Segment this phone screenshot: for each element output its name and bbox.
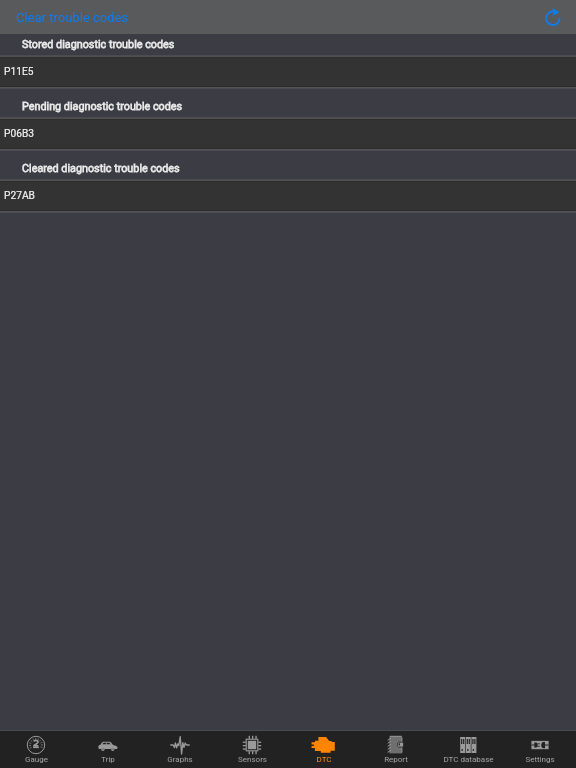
staticText: P11E5 [4, 66, 34, 78]
button[interactable]: Refresh [540, 4, 566, 30]
button[interactable]: Stored diagnostic trouble codes [0, 34, 576, 55]
staticText: DTC database [443, 755, 494, 764]
button[interactable]: Pending diagnostic trouble codes [0, 96, 576, 117]
button[interactable]: Trip [72, 731, 144, 768]
staticText: Pending diagnostic trouble codes [22, 100, 183, 113]
staticText: Graphs [167, 755, 193, 764]
staticText: Gauge [25, 755, 48, 764]
staticText: Cleared diagnostic trouble codes [22, 162, 180, 175]
button[interactable]: Cleared diagnostic trouble codes [0, 158, 576, 179]
button[interactable]: Sensors [216, 731, 288, 768]
staticText: P27AB [4, 190, 35, 202]
staticText: Trip [101, 755, 115, 764]
button[interactable]: Settings [504, 731, 576, 768]
staticText: Sensors [238, 755, 267, 764]
staticText: P06B3 [4, 128, 34, 140]
button[interactable]: Report [360, 731, 432, 768]
button[interactable]: Gauge [0, 731, 72, 768]
staticText: Settings [525, 755, 555, 764]
staticText: Report [384, 755, 408, 764]
button[interactable]: DTC database [432, 731, 504, 768]
button[interactable]: P11E5 [0, 58, 576, 86]
button[interactable]: DTC [288, 731, 360, 768]
button[interactable]: Graphs [144, 731, 216, 768]
staticText: Clear trouble codes [16, 10, 129, 25]
staticText: DTC [316, 755, 332, 764]
button[interactable]: P27AB [0, 182, 576, 210]
button[interactable]: P06B3 [0, 120, 576, 148]
staticText: Stored diagnostic trouble codes [22, 38, 175, 51]
